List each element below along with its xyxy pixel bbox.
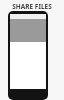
staticText: SHARE FILES xyxy=(12,2,52,11)
